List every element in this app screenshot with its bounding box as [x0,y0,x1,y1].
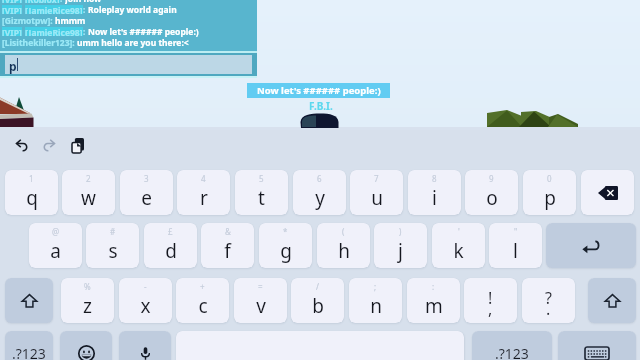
button[interactable]: Switch keyboard [558,331,636,360]
button[interactable]: ) [374,223,427,268]
staticText: 6 [317,173,322,184]
button[interactable]: ? . [522,278,575,323]
staticText: l [513,238,518,264]
staticText: Now let's ###### people:) [88,26,199,37]
staticText: ) [399,226,402,237]
button[interactable]: - [119,278,172,323]
staticText: " [514,226,518,237]
staticText: i [432,185,437,211]
button[interactable]: Backspace [581,170,634,215]
button[interactable]: = [234,278,287,323]
staticText: .?123 [12,344,46,360]
button[interactable]: " [489,223,542,268]
staticText: - [144,281,147,292]
staticText: k [453,238,464,264]
staticText: a [50,238,61,264]
staticText: ( [342,226,345,237]
staticText: p [9,58,17,74]
button[interactable]: # [86,223,139,268]
staticText: m [425,293,443,319]
staticText: 4 [201,173,206,184]
staticText: 5 [259,173,264,184]
button[interactable]: Shift [5,278,53,323]
button[interactable]: % [61,278,114,323]
staticText: x [140,293,151,319]
staticText: 9 [489,173,494,184]
button[interactable]: @ [29,223,82,268]
staticText: [VIP] [2,27,22,36]
staticText: h [338,238,350,264]
button[interactable]: Shift [588,278,636,323]
button[interactable]: p [5,55,252,74]
button[interactable]: 7 [350,170,403,215]
staticText: j [398,238,403,264]
staticText: [JamieRice98] [25,5,83,14]
button[interactable]: + [176,278,229,323]
button[interactable]: ! , [464,278,517,323]
staticText: . [546,298,551,320]
staticText: e [141,185,152,211]
staticText: q [26,185,38,211]
staticText: v [256,293,266,319]
staticText: : [60,0,65,4]
staticText: [Lisithekiller123]: [2,37,77,48]
staticText: 2 [86,173,91,184]
staticText: umm hello are you there:< [77,37,189,48]
staticText: : [432,281,435,292]
staticText: .?123 [495,344,529,360]
button[interactable]: 9 [465,170,518,215]
staticText: * [283,226,288,237]
button[interactable]: 6 [293,170,346,215]
staticText: w [81,185,96,211]
button[interactable]: Symbols [5,331,53,360]
staticText: s [108,238,118,264]
button[interactable]: ( [317,223,370,268]
staticText: 3 [144,173,149,184]
button[interactable]: Redo [38,134,60,156]
button[interactable]: £ [144,223,197,268]
button[interactable]: 2 [62,170,115,215]
staticText: g [280,238,292,264]
button[interactable]: & [201,223,254,268]
button[interactable]: ; [349,278,402,323]
staticText: 8 [432,173,437,184]
button[interactable]: 3 [120,170,173,215]
staticText: 7 [374,173,379,184]
staticText: = [258,281,263,292]
button[interactable]: Enter [546,223,636,268]
staticText: r [200,185,208,211]
staticText: c [198,293,208,319]
staticText: [VIP] [2,0,22,3]
staticText: @ [52,226,60,237]
staticText: f [224,238,231,264]
staticText: ' [458,226,460,237]
button[interactable]: Clipboard [67,134,89,156]
button[interactable]: 5 [235,170,288,215]
button[interactable]: Voice input [119,331,171,360]
button[interactable]: 8 [408,170,461,215]
button[interactable]: Undo [11,134,33,156]
button[interactable]: Symbols [472,331,552,360]
staticText: [Roblox] [25,0,60,3]
staticText: ! [488,287,493,309]
button[interactable]: 0 [523,170,576,215]
staticText: : [83,4,88,15]
button[interactable]: ' [432,223,485,268]
staticText: [Gizmotpw]: [2,15,55,26]
staticText: : [83,26,88,37]
button[interactable]: 1 [5,170,58,215]
button[interactable]: Emoji [60,331,112,360]
staticText: 0 [547,173,552,184]
button[interactable]: 4 [177,170,230,215]
button[interactable]: : [407,278,460,323]
staticText: [VIP] [2,5,22,14]
button[interactable]: * [259,223,312,268]
staticText: F.B.I. [309,99,333,113]
staticText: £ [168,226,173,237]
button[interactable]: / [291,278,344,323]
staticText: + [200,281,205,292]
staticText: & [225,226,231,237]
